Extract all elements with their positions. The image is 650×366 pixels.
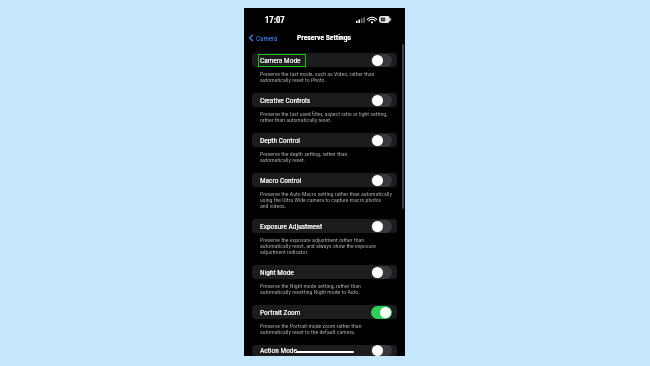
staticText: Preserve the last used filter, aspect ra… [260,111,388,117]
staticText: 17:07 [265,15,285,25]
button[interactable]: Toggle [371,174,392,187]
staticText: Camera Mode [260,56,301,65]
button[interactable]: Depth Control [252,133,397,147]
button[interactable]: Toggle [371,94,392,107]
staticText: Depth Control [260,136,301,145]
staticText: Night Mode [260,268,294,277]
staticText: using the Ultra Wide camera to capture m… [260,197,382,203]
staticText: Creative Controls [260,96,311,105]
staticText: Preserve the Portrait mode zoom rather t… [260,323,362,329]
button[interactable]: Toggle [371,306,392,319]
button[interactable]: Toggle [371,266,392,279]
staticText: rather than automatically reset. [260,117,332,123]
staticText: automatically resetting Night mode to Au… [260,289,360,295]
staticText: Exposure Adjustment [260,222,323,231]
button[interactable]: Creative Controls [252,93,397,107]
staticText: Preserve Settings [297,33,352,42]
button[interactable]: Toggle [371,134,392,147]
staticText: Action Mode [260,346,297,355]
button[interactable]: Toggle [371,220,392,233]
staticText: Preserve the Night mode setting, rather … [260,283,361,289]
staticText: automatically reset. [260,157,306,163]
button[interactable]: Camera Mode [252,53,397,67]
staticText: and videos. [260,203,287,209]
button[interactable]: Exposure Adjustment [252,219,397,233]
staticText: automatically reset, and always show the… [260,243,376,249]
staticText: Preserve the exposure adjustment rather … [260,237,365,243]
staticText: Preserve the last mode, such as Video, r… [260,71,375,77]
staticText: Macro Control [260,176,302,185]
button[interactable]: Toggle [371,54,392,67]
staticText: Camera [256,34,278,42]
staticText: automatically reset to Photo. [260,77,326,83]
button[interactable]: Camera [249,34,278,42]
button[interactable]: Action Mode [252,345,397,356]
staticText: Portrait Zoom [260,308,301,317]
button[interactable]: Portrait Zoom [252,305,397,319]
button[interactable]: Macro Control [252,173,397,187]
staticText: Preserve the Auto Macro setting rather t… [260,191,392,197]
button[interactable]: Toggle [371,345,392,356]
staticText: adjustment indicator. [260,249,309,255]
staticText: automatically reset to the default camer… [260,329,356,335]
button[interactable]: Night Mode [252,265,397,279]
staticText: Preserve the depth setting, rather than [260,151,348,157]
